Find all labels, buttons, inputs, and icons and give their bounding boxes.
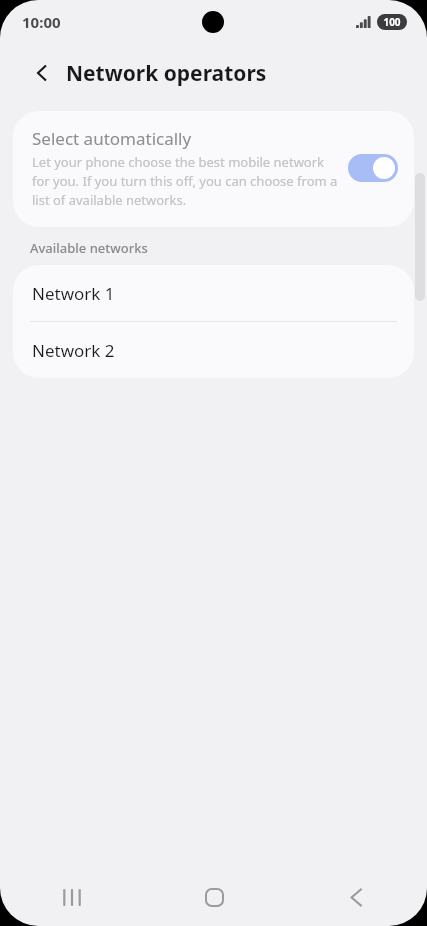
button[interactable]: Back (285, 868, 427, 926)
staticText: Available networks (30, 239, 148, 257)
button[interactable]: Back (20, 51, 64, 95)
staticText: 100 (383, 15, 401, 29)
staticText: Select automatically (32, 127, 192, 150)
button[interactable]: Home (143, 868, 285, 926)
staticText: Network operators (66, 59, 267, 88)
button[interactable]: Network 1 (13, 265, 414, 321)
staticText: Let your phone choose the best mobile ne… (32, 153, 338, 209)
button[interactable]: Select automatically toggle (348, 154, 398, 182)
button[interactable]: Select automatically (13, 111, 414, 227)
staticText: 10:00 (22, 12, 61, 32)
button[interactable]: Recents (0, 868, 143, 926)
staticText: Network 2 (32, 339, 115, 362)
staticText: Network 1 (32, 282, 115, 305)
button[interactable]: Network 2 (13, 322, 414, 378)
